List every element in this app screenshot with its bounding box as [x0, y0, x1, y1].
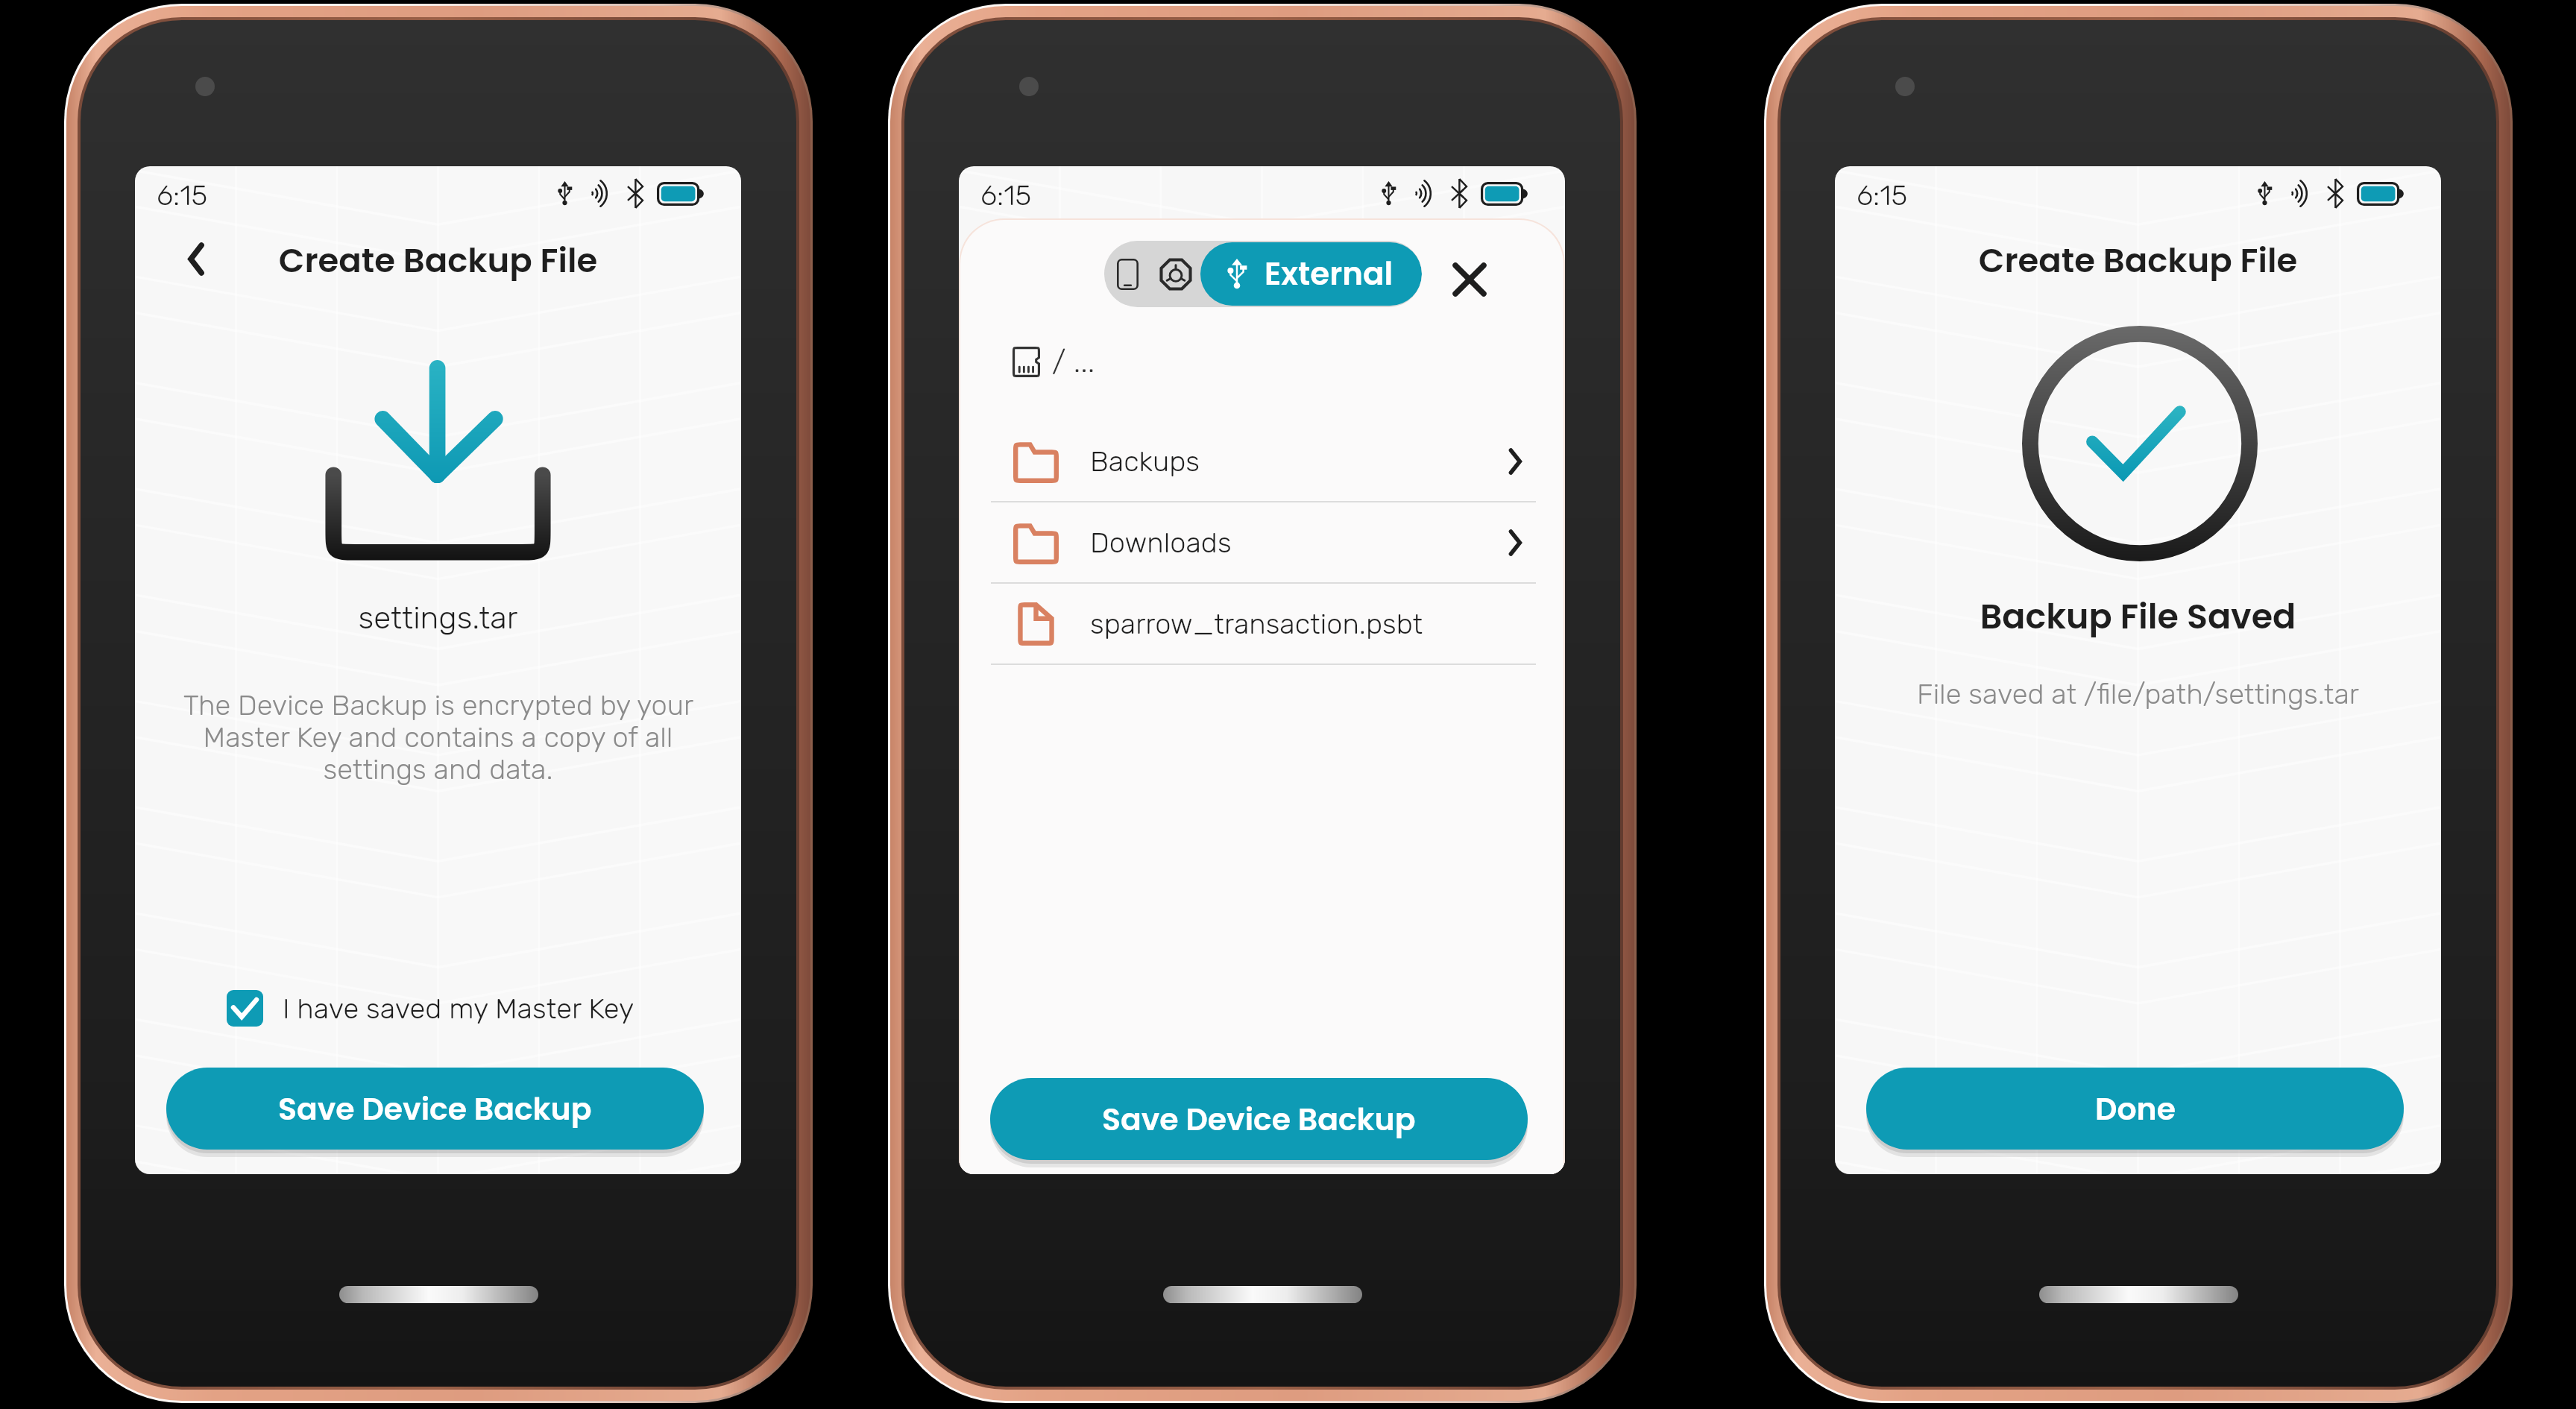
staticText: / ... — [1052, 344, 1095, 379]
staticText: I have saved my Master Key — [283, 992, 634, 1025]
button[interactable]: Save Device Backup — [166, 1068, 704, 1150]
button[interactable]: Save Device Backup — [990, 1078, 1528, 1160]
staticText: Create Backup File — [1835, 237, 2441, 284]
staticText: settings.tar — [135, 599, 741, 637]
staticText: Downloads — [1090, 526, 1232, 559]
staticText: Save Device Backup — [278, 1088, 592, 1130]
staticText: The Device Backup is encrypted by your M… — [174, 688, 702, 786]
staticText: Backups — [1090, 444, 1200, 478]
staticText: 6:15 — [1857, 178, 1908, 212]
staticText: sparrow_transaction.psbt — [1090, 607, 1423, 640]
button[interactable]: Backups — [991, 421, 1536, 502]
staticText: File saved at /file/path/settings.tar — [1835, 677, 2441, 710]
staticText: External — [1265, 252, 1394, 296]
button[interactable]: Internal storage — [1104, 241, 1150, 307]
button[interactable]: SD card — [1150, 241, 1200, 307]
staticText: Save Device Backup — [1102, 1098, 1416, 1141]
button[interactable]: I have saved my Master Key — [227, 981, 634, 1035]
button[interactable]: Back — [169, 232, 223, 286]
button[interactable]: Done — [1866, 1068, 2404, 1150]
button[interactable]: Downloads — [991, 502, 1536, 584]
staticText: Backup File Saved — [1835, 593, 2441, 640]
staticText: 6:15 — [980, 178, 1032, 212]
button[interactable]: External — [1200, 242, 1422, 306]
button[interactable]: Close — [1443, 253, 1496, 306]
staticText: 6:15 — [157, 178, 208, 212]
button[interactable]: sparrow_transaction.psbt — [991, 584, 1536, 665]
staticText: Done — [2095, 1088, 2176, 1130]
staticText: Create Backup File — [135, 237, 741, 284]
